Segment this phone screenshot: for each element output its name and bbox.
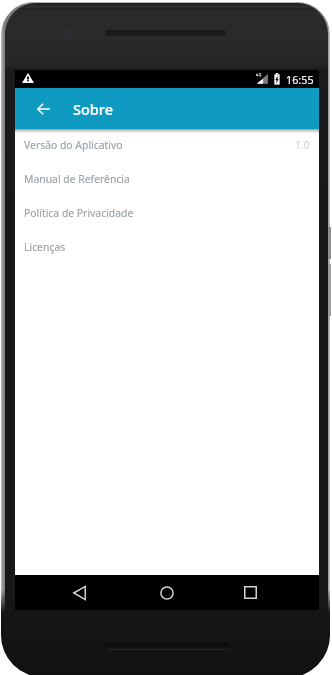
staticText: Sobre (73, 99, 113, 119)
button[interactable]: Política de Privacidade (15, 196, 319, 230)
button[interactable]: Versão do Aplicativo (15, 128, 319, 162)
staticText: Versão do Aplicativo (24, 138, 123, 152)
staticText: 1.0 (295, 138, 310, 152)
staticText: Licenças (24, 240, 66, 254)
button[interactable]: Licenças (15, 230, 319, 264)
button[interactable]: Back (62, 575, 97, 610)
staticText: Política de Privacidade (24, 206, 134, 220)
staticText: Manual de Referência (24, 172, 130, 186)
button[interactable]: Home (149, 575, 184, 610)
staticText: 16:55 (286, 72, 314, 87)
button[interactable]: Manual de Referência (15, 162, 319, 196)
button[interactable]: Back (29, 95, 57, 123)
button[interactable]: Recent apps (233, 575, 268, 610)
